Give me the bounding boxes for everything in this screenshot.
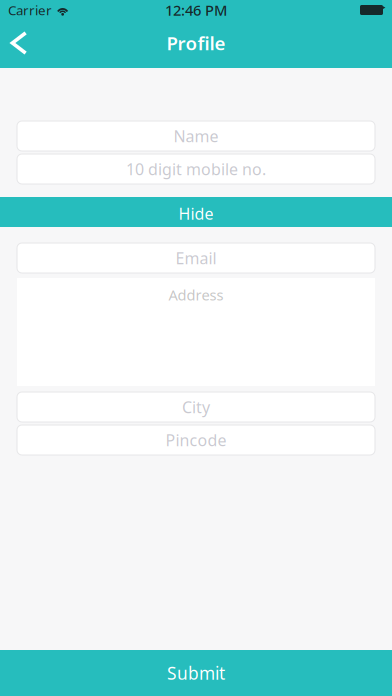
staticText: Name bbox=[173, 125, 218, 147]
button[interactable]: Submit bbox=[0, 650, 392, 696]
button[interactable]: Hide bbox=[0, 197, 392, 227]
staticText: 12:46 PM bbox=[165, 0, 227, 20]
staticText: Hide bbox=[178, 203, 213, 224]
button[interactable]: Back bbox=[1, 21, 37, 65]
staticText: Address bbox=[168, 285, 223, 304]
staticText: Email bbox=[175, 247, 216, 269]
staticText: Pincode bbox=[165, 429, 226, 451]
staticText: Profile bbox=[166, 31, 225, 55]
staticText: Carrier bbox=[8, 1, 52, 19]
staticText: City bbox=[182, 396, 210, 418]
staticText: Submit bbox=[167, 661, 225, 684]
staticText: 10 digit mobile no. bbox=[126, 158, 266, 180]
